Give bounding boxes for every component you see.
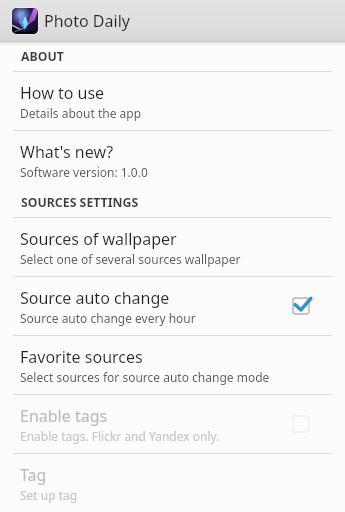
staticText: What's new? bbox=[20, 141, 114, 163]
button[interactable]: Enable tags bbox=[0, 395, 345, 453]
staticText: Favorite sources bbox=[20, 346, 143, 368]
staticText: SOURCES SETTINGS bbox=[21, 194, 139, 211]
button[interactable]: Toggle setting bbox=[285, 408, 317, 440]
staticText: Tag bbox=[20, 464, 47, 486]
staticText: Enable tags. Flickr and Yandex only. bbox=[20, 428, 220, 444]
button[interactable]: Toggle setting bbox=[285, 290, 317, 322]
staticText: Photo Daily bbox=[44, 10, 130, 32]
staticText: Sources of wallpaper bbox=[20, 228, 177, 250]
staticText: Source auto change every hour bbox=[20, 310, 196, 326]
staticText: Details about the app bbox=[20, 105, 142, 121]
button[interactable]: Sources of wallpaper bbox=[0, 218, 345, 276]
staticText: Source auto change bbox=[20, 287, 170, 309]
staticText: Software version: 1.0.0 bbox=[20, 164, 148, 180]
button[interactable]: Tag bbox=[0, 454, 345, 512]
other: Photo Daily app icon bbox=[11, 7, 39, 35]
staticText: ABOUT bbox=[21, 48, 64, 65]
button[interactable]: Favorite sources bbox=[0, 336, 345, 394]
button[interactable]: How to use bbox=[0, 72, 345, 130]
staticText: How to use bbox=[20, 82, 105, 104]
staticText: Select sources for source auto change mo… bbox=[20, 369, 270, 385]
button[interactable]: Source auto change bbox=[0, 277, 345, 335]
staticText: Set up tag bbox=[20, 487, 78, 503]
button[interactable]: What's new? bbox=[0, 131, 345, 189]
staticText: Enable tags bbox=[20, 405, 108, 427]
staticText: Select one of several sources wallpaper bbox=[20, 251, 241, 267]
